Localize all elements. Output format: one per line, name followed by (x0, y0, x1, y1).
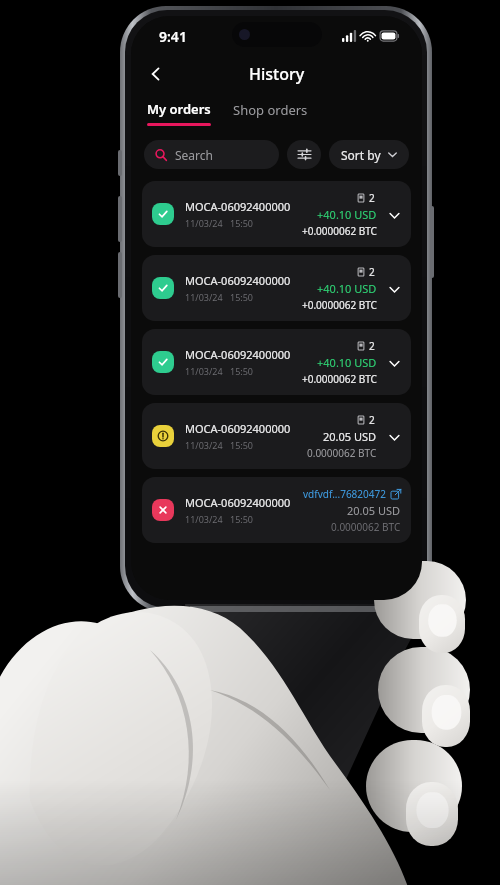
staticText: +40.10 USD (317, 207, 377, 222)
staticText: 2 (369, 339, 375, 353)
button[interactable]: Sort by (329, 140, 409, 169)
staticText: 20.05 USD (347, 503, 401, 518)
staticText: 15:50 (230, 439, 254, 451)
staticText: 0.0000062 BTC (307, 446, 377, 460)
staticText: Shop orders (233, 101, 308, 119)
button[interactable]: Expand (387, 356, 401, 370)
staticText: 11/03/24 (185, 291, 223, 303)
button[interactable]: MOCA-06092400000 (142, 181, 411, 247)
staticText: 9:41 (159, 27, 187, 46)
staticText: 0.0000062 BTC (331, 520, 401, 534)
staticText: +0.0000062 BTC (302, 224, 377, 238)
button[interactable]: Back (139, 57, 173, 91)
button[interactable]: Expand (387, 430, 401, 444)
button[interactable]: MOCA-06092400000 (142, 329, 411, 395)
staticText: Search (175, 147, 213, 163)
button[interactable]: MOCA-06092400000 (142, 403, 411, 469)
staticText: +40.10 USD (317, 281, 377, 296)
button[interactable]: Shop orders (229, 100, 312, 120)
button[interactable]: MOCA-06092400000 (142, 255, 411, 321)
staticText: 15:50 (230, 291, 254, 303)
button[interactable]: Search (144, 140, 279, 169)
staticText: History (249, 63, 305, 85)
staticText: 11/03/24 (185, 365, 223, 377)
staticText: +0.0000062 BTC (302, 372, 377, 386)
button[interactable]: Expand (387, 282, 401, 296)
staticText: +0.0000062 BTC (302, 298, 377, 312)
button[interactable]: Open transaction (391, 489, 401, 499)
staticText: MOCA-06092400000 (185, 273, 291, 288)
staticText: MOCA-06092400000 (185, 421, 291, 436)
button[interactable]: My orders (145, 100, 213, 126)
staticText: 11/03/24 (185, 217, 223, 229)
staticText: 20.05 USD (323, 429, 377, 444)
staticText: +40.10 USD (317, 355, 377, 370)
staticText: My orders (147, 100, 211, 118)
staticText: 15:50 (230, 513, 254, 525)
button[interactable]: MOCA-06092400000 (142, 477, 411, 543)
button[interactable]: Expand (387, 208, 401, 222)
staticText: MOCA-06092400000 (185, 495, 291, 510)
staticText: Sort by (341, 147, 381, 163)
staticText: MOCA-06092400000 (185, 347, 291, 362)
staticText: 11/03/24 (185, 513, 223, 525)
staticText: 2 (369, 265, 375, 279)
staticText: MOCA-06092400000 (185, 199, 291, 214)
staticText: 11/03/24 (185, 439, 223, 451)
button[interactable]: Filter (287, 140, 321, 169)
staticText: 15:50 (230, 217, 254, 229)
staticText: 2 (369, 413, 375, 427)
staticText: 15:50 (230, 365, 254, 377)
staticText: vdfvdf...76820472 (303, 487, 386, 501)
staticText: 2 (369, 191, 375, 205)
